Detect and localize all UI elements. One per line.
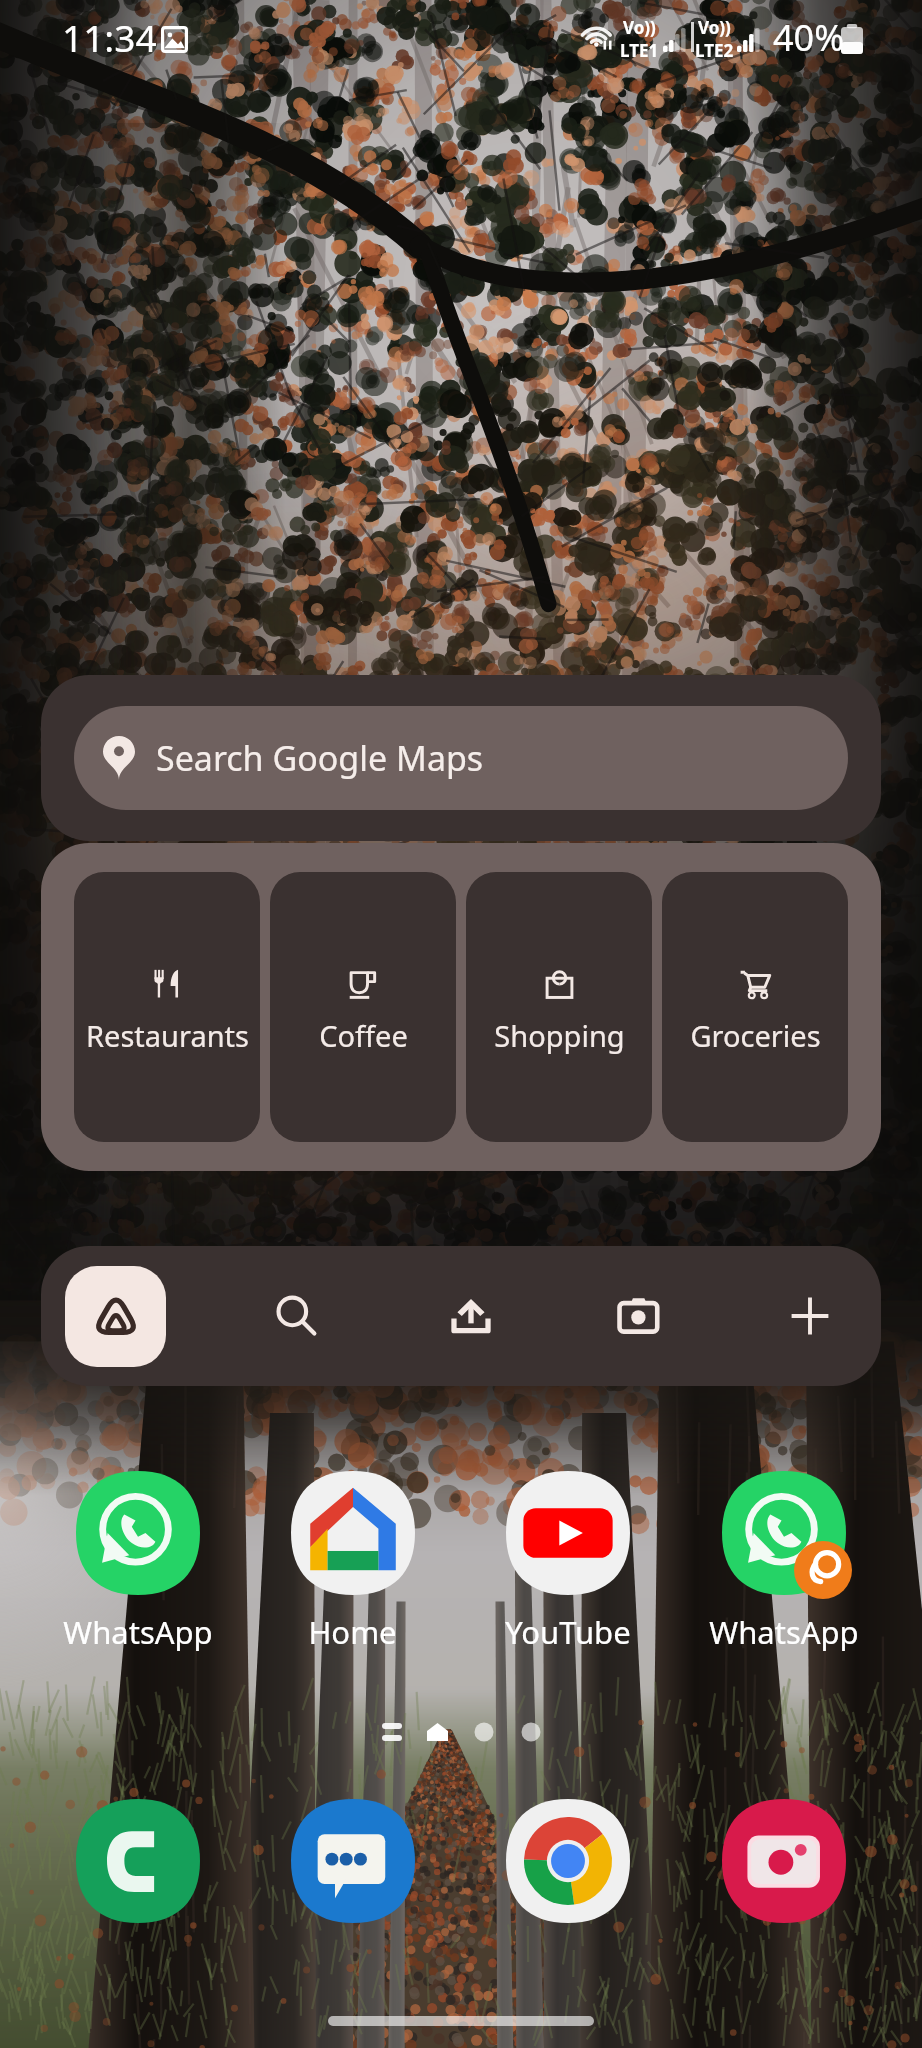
- button[interactable]: Restaurants: [74, 872, 260, 1142]
- button[interactable]: Phone: [30, 1799, 245, 1923]
- staticText: 40%: [773, 13, 845, 62]
- button[interactable]: YouTube: [460, 1471, 676, 1653]
- button[interactable]: Search: [250, 1270, 342, 1362]
- staticText: Coffee: [319, 1016, 408, 1055]
- button[interactable]: Messages: [245, 1799, 460, 1923]
- button[interactable]: Groceries: [662, 872, 848, 1142]
- button[interactable]: New: [764, 1270, 856, 1362]
- button[interactable]: Coffee: [270, 872, 456, 1142]
- staticText: Search Google Maps: [156, 735, 484, 781]
- button[interactable]: Search Google Maps: [41, 675, 881, 841]
- button[interactable]: Camera: [676, 1799, 892, 1923]
- staticText: LTE1: [620, 39, 659, 62]
- button[interactable]: WhatsApp: [30, 1471, 245, 1653]
- staticText: Restaurants: [86, 1016, 249, 1055]
- staticText: WhatsApp: [709, 1611, 859, 1653]
- button[interactable]: Chrome: [460, 1799, 676, 1923]
- button[interactable]: Home: [245, 1471, 460, 1653]
- staticText: 11:34: [62, 12, 157, 62]
- staticText: WhatsApp: [63, 1611, 213, 1653]
- staticText: Shopping: [494, 1016, 625, 1055]
- button[interactable]: Scan document: [594, 1270, 686, 1362]
- staticText: YouTube: [505, 1611, 631, 1653]
- staticText: Vo)): [698, 16, 731, 39]
- staticText: Vo)): [623, 16, 656, 39]
- staticText: Home: [308, 1611, 397, 1653]
- staticText: Groceries: [690, 1016, 821, 1055]
- button[interactable]: Google Drive: [65, 1266, 166, 1367]
- button[interactable]: WhatsApp: [676, 1471, 892, 1653]
- button[interactable]: Shopping: [466, 872, 652, 1142]
- staticText: LTE2: [695, 39, 734, 62]
- button[interactable]: Upload: [425, 1270, 517, 1362]
